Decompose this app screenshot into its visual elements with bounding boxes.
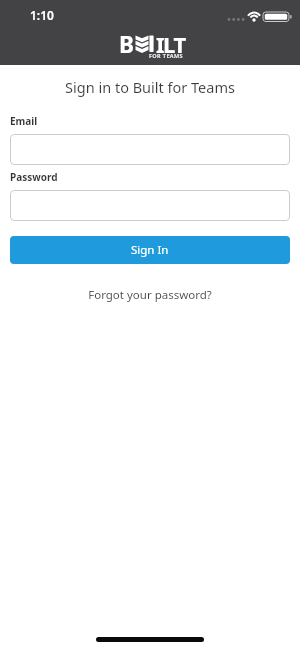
button[interactable]: Sign In [10, 236, 290, 264]
button[interactable] [10, 190, 290, 221]
button[interactable]: Forgot your password? [0, 287, 300, 303]
staticText: 1:10 [30, 7, 54, 23]
staticText: Email [10, 114, 38, 128]
staticText: Sign in to Built for Teams [0, 77, 300, 97]
staticText: Password [10, 170, 58, 184]
staticText: Sign In [131, 242, 169, 258]
button[interactable] [10, 134, 290, 165]
staticText: B [119, 29, 134, 60]
staticText: ILT [156, 29, 185, 59]
staticText: FOR TEAMS [149, 52, 183, 59]
